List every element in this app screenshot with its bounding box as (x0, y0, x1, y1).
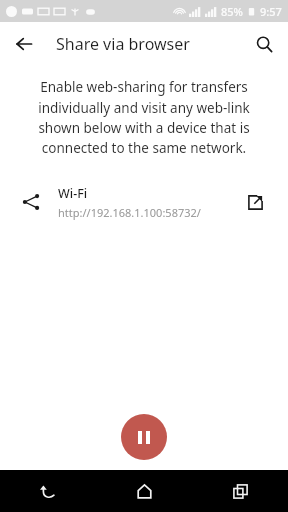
staticText: http://192.168.1.100:58732/ (58, 205, 201, 220)
button[interactable]: Wi-Fi (0, 179, 288, 225)
button[interactable]: Pause sharing (121, 414, 167, 460)
button[interactable]: Back (24, 470, 72, 512)
button[interactable]: Open in browser (240, 187, 270, 217)
button[interactable]: Search (248, 28, 280, 60)
staticText: Wi-Fi (58, 185, 88, 202)
button[interactable]: Recent apps (216, 470, 264, 512)
button[interactable]: Back (8, 28, 40, 60)
button[interactable]: Home (120, 470, 168, 512)
staticText: Enable web-sharing for transfers individ… (16, 78, 272, 157)
staticText: Share via browser (56, 33, 190, 55)
staticText: 85% (221, 4, 243, 19)
staticText: 9:57 (260, 4, 282, 19)
